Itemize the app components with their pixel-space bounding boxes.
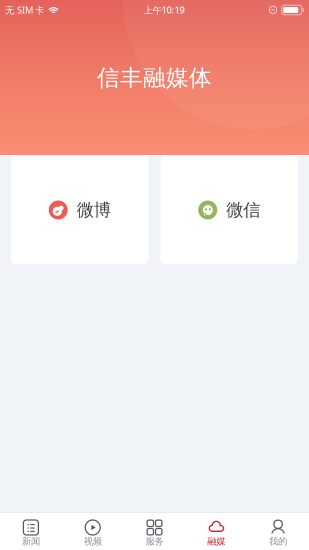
button[interactable]: 微信 xyxy=(160,156,298,264)
staticText: 我的 xyxy=(269,536,287,547)
button[interactable]: 新闻 xyxy=(0,513,62,550)
button[interactable]: 微博 xyxy=(11,156,148,264)
staticText: 上午10:19 xyxy=(143,4,184,16)
button[interactable]: 视频 xyxy=(62,513,124,550)
staticText: 无 SIM 卡 xyxy=(5,4,44,16)
staticText: 新闻 xyxy=(22,536,40,547)
button[interactable]: 服务 xyxy=(124,513,185,550)
staticText: 微信 xyxy=(226,199,260,221)
staticText: 融媒 xyxy=(207,536,225,547)
staticText: 服务 xyxy=(145,536,163,547)
staticText: 视频 xyxy=(84,536,102,547)
button[interactable]: 我的 xyxy=(247,513,309,550)
button[interactable]: 融媒 xyxy=(185,513,247,550)
staticText: 微博 xyxy=(77,199,111,221)
staticText: 信丰融媒体 xyxy=(97,64,212,92)
